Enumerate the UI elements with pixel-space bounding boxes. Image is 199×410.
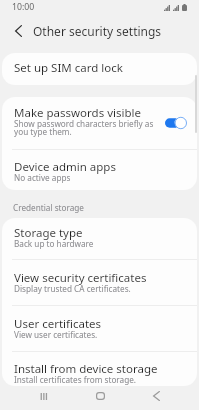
staticText: Make passwords visible [14,105,141,121]
button[interactable]: Recent apps [22,386,66,410]
staticText: 10:00 [12,1,35,13]
button[interactable]: Set up SIM card lock [2,53,197,85]
button[interactable]: Home [78,386,122,410]
staticText: Set up SIM card lock [14,60,123,76]
staticText: Storage type [14,225,83,241]
button[interactable]: Make passwords visible [2,97,197,149]
staticText: Install certificates from storage. [14,374,136,385]
staticText: Install from device storage [14,361,158,377]
button[interactable]: Device admin apps [2,150,197,190]
staticText: Show password characters briefly as you … [14,118,154,138]
staticText: No active apps [14,172,71,183]
staticText: View user certificates. [14,329,98,340]
staticText: Credential storage [13,202,84,213]
staticText: User certificates [14,316,102,332]
button[interactable]: Install from device storage [2,352,197,386]
button[interactable]: User certificates [2,306,197,351]
staticText: View security certificates [14,270,147,286]
button[interactable]: View security certificates [2,260,197,305]
button[interactable]: Make passwords visible [165,116,187,130]
staticText: Device admin apps [14,159,116,175]
staticText: Display trusted CA certificates. [14,283,131,294]
staticText: Back up to hardware [14,238,94,249]
button[interactable]: Navigate up [5,16,31,46]
button[interactable]: Back [134,386,178,410]
button[interactable]: Storage type [2,218,197,259]
staticText: Other security settings [33,23,162,39]
